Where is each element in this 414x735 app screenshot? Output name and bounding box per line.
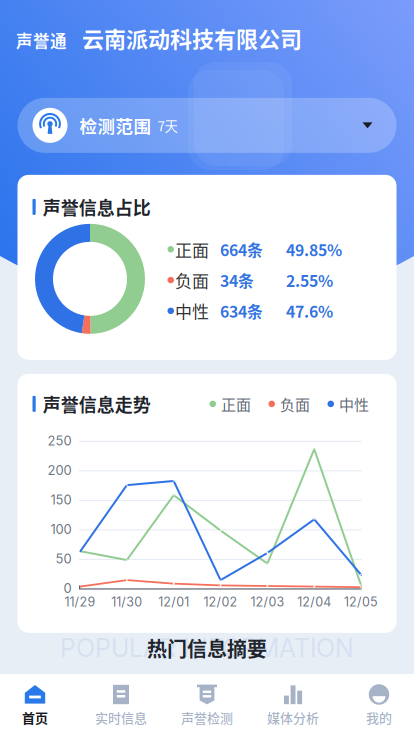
staticText: 7天 — [157, 116, 178, 135]
staticText: 47.6% — [286, 299, 333, 322]
staticText: 我的 — [366, 708, 392, 727]
staticText: 媒体分析 — [267, 708, 319, 727]
staticText: 热门信息摘要 — [147, 633, 267, 662]
staticText: 正面 — [221, 393, 251, 415]
staticText: 12/02 — [204, 594, 238, 609]
staticText: 声誉信息走势 — [43, 391, 151, 417]
button[interactable]: 实时信息 — [78, 684, 164, 727]
staticText: 中性 — [339, 393, 369, 415]
staticText: 250 — [47, 433, 71, 449]
staticText: 12/05 — [344, 594, 378, 609]
staticText: 实时信息 — [95, 708, 147, 727]
staticText: 声誉检测 — [181, 708, 233, 727]
button[interactable]: 媒体分析 — [250, 684, 336, 727]
staticText: 2.55% — [286, 269, 333, 291]
staticText: 检测范围 — [79, 113, 151, 138]
staticText: 声誉信息占比 — [43, 194, 151, 220]
staticText: POPULAR INFORMATION — [60, 633, 354, 663]
staticText: 34条 — [220, 269, 254, 291]
staticText: 11/29 — [64, 594, 95, 609]
button[interactable]: 检测范围 — [17, 98, 396, 153]
staticText: 声誉通 — [16, 28, 67, 52]
button[interactable]: 我的 — [336, 684, 414, 727]
staticText: 49.85% — [286, 238, 342, 261]
staticText: 12/04 — [297, 594, 331, 609]
button[interactable]: 声誉检测 — [164, 684, 250, 727]
staticText: 0 — [63, 580, 71, 596]
staticText: 200 — [47, 462, 71, 478]
staticText: 634条 — [220, 299, 263, 322]
staticText: 中性 — [175, 298, 209, 323]
staticText: 12/03 — [250, 594, 284, 609]
staticText: 100 — [50, 521, 71, 537]
staticText: 664条 — [220, 238, 263, 261]
staticText: 50 — [55, 551, 71, 567]
staticText: 11/30 — [111, 594, 142, 609]
staticText: 150 — [50, 492, 71, 508]
staticText: 负面 — [280, 393, 310, 415]
button[interactable]: 首页 — [0, 684, 78, 727]
staticText: 12/01 — [158, 594, 189, 609]
staticText: 云南派动科技有限公司 — [82, 22, 302, 54]
staticText: 负面 — [175, 268, 209, 292]
staticText: 正面 — [175, 237, 209, 261]
staticText: 首页 — [22, 708, 48, 727]
